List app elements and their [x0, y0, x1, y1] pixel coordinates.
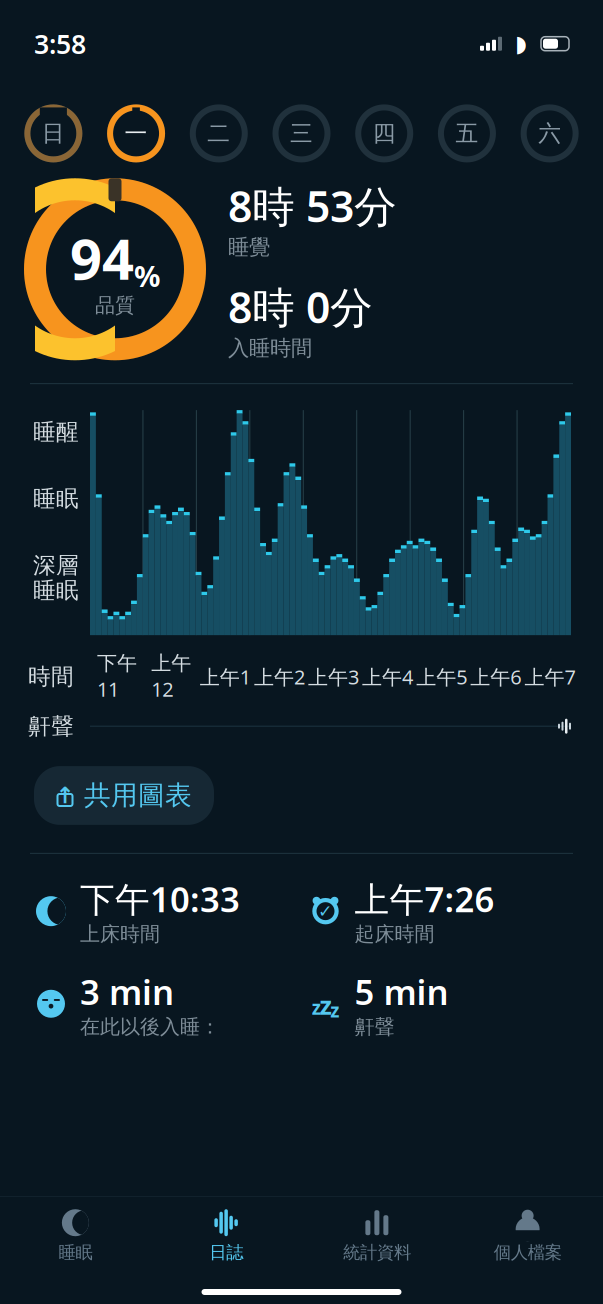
staticText: 上午7 — [524, 663, 575, 690]
staticText: 下午11 — [97, 651, 137, 702]
staticText: 8時 53分 — [228, 177, 397, 234]
staticText: 鼾聲 — [354, 1014, 394, 1039]
staticText: 個人檔案 — [494, 1242, 562, 1263]
staticText: 上午12 — [151, 651, 191, 702]
staticText: 上午5 — [416, 663, 467, 690]
staticText: 上午1 — [200, 663, 251, 690]
button[interactable]: 三 — [273, 105, 329, 161]
staticText: 睡眠 — [58, 1242, 92, 1263]
button[interactable]: 四 — [356, 105, 412, 161]
button[interactable]: ↑ — [34, 766, 214, 825]
staticText: 共用圖表 — [84, 779, 192, 812]
button[interactable]: 個人檔案 — [452, 1201, 603, 1269]
staticText: 5 min — [354, 968, 448, 1014]
staticText: 時間 — [28, 663, 74, 691]
staticText: 上午6 — [470, 663, 521, 690]
staticText: 起床時間 — [354, 922, 434, 946]
staticText: ↑ — [55, 783, 74, 808]
staticText: 四 — [373, 119, 396, 147]
staticText: 五 — [455, 119, 478, 147]
staticText: 入睡時間 — [228, 335, 312, 361]
button[interactable]: 一 — [108, 105, 164, 161]
staticText: 睡眠 — [33, 576, 79, 604]
staticText: 上床時間 — [80, 922, 160, 946]
button[interactable]: 日 — [25, 105, 81, 161]
staticText: z — [312, 995, 321, 1020]
staticText: 鼾聲 — [28, 712, 74, 740]
staticText: 94 — [70, 221, 134, 295]
staticText: 上午3 — [308, 663, 359, 690]
staticText: 上午7:26 — [354, 876, 494, 922]
staticText: 下午10:33 — [80, 876, 240, 922]
button[interactable]: 二 — [191, 105, 247, 161]
staticText: 3 min — [80, 968, 174, 1014]
staticText: 3:58 — [34, 26, 86, 61]
staticText: 品質 — [95, 293, 135, 318]
button[interactable]: 睡眠 — [0, 1201, 151, 1269]
staticText: % — [134, 256, 160, 295]
staticText: ◗ — [515, 31, 527, 56]
staticText: 統計資料 — [343, 1242, 411, 1263]
staticText: 睡眠 — [33, 485, 79, 513]
button[interactable]: 日誌 — [151, 1201, 302, 1269]
staticText: 睡覺 — [228, 234, 270, 260]
staticText: z — [319, 988, 331, 1022]
staticText: z — [330, 998, 339, 1023]
staticText: 上午2 — [254, 663, 305, 690]
staticText: 六 — [538, 119, 561, 147]
staticText: 日 — [42, 119, 65, 147]
staticText: 8時 0分 — [228, 278, 373, 335]
staticText: 日誌 — [209, 1242, 243, 1263]
staticText: 三 — [290, 119, 313, 147]
button[interactable]: 統計資料 — [301, 1201, 452, 1269]
staticText: 睡醒 — [33, 418, 79, 446]
staticText: 上午4 — [362, 663, 413, 690]
button[interactable]: 六 — [522, 105, 578, 161]
staticText: ✓ — [318, 901, 333, 921]
staticText: 二 — [207, 119, 230, 147]
button[interactable]: 五 — [439, 105, 495, 161]
staticText: 一 — [125, 119, 148, 147]
staticText: 深層 — [33, 552, 79, 579]
staticText: 在此以後入睡： — [80, 1014, 220, 1039]
